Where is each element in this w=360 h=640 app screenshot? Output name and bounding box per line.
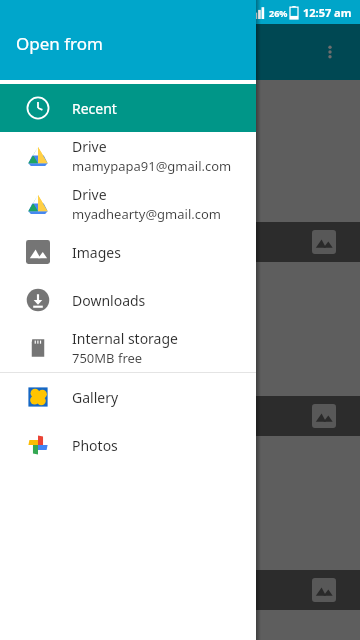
- staticText: Open from: [16, 32, 103, 55]
- button[interactable]: [0, 222, 360, 262]
- staticText: Recent: [72, 99, 117, 118]
- button[interactable]: Drive: [0, 180, 256, 228]
- staticText: mamypapa91@gmail.com: [72, 157, 232, 175]
- button[interactable]: Images: [0, 228, 256, 276]
- staticText: Drive: [72, 137, 107, 156]
- button[interactable]: Downloads: [0, 276, 256, 324]
- staticText: Drive: [72, 185, 107, 204]
- button[interactable]: Internal storage: [0, 324, 256, 372]
- staticText: 26%: [269, 7, 288, 19]
- staticText: Gallery: [72, 388, 119, 407]
- button[interactable]: [0, 396, 360, 436]
- staticText: myadhearty@gmail.com: [72, 205, 222, 223]
- staticText: 12:57 am: [303, 5, 352, 20]
- button[interactable]: Gallery: [0, 373, 256, 421]
- staticText: 750MB free: [72, 349, 143, 367]
- staticText: Images: [72, 243, 121, 262]
- button[interactable]: Drive: [0, 132, 256, 180]
- button[interactable]: [0, 436, 360, 570]
- staticText: Photos: [72, 436, 118, 455]
- staticText: Downloads: [72, 291, 146, 310]
- button[interactable]: Photos: [0, 421, 256, 469]
- button[interactable]: [0, 570, 360, 610]
- button[interactable]: Recent: [0, 84, 256, 132]
- button[interactable]: [0, 262, 360, 396]
- button[interactable]: [0, 80, 360, 222]
- staticText: Internal storage: [72, 329, 178, 348]
- button[interactable]: More options: [310, 32, 350, 72]
